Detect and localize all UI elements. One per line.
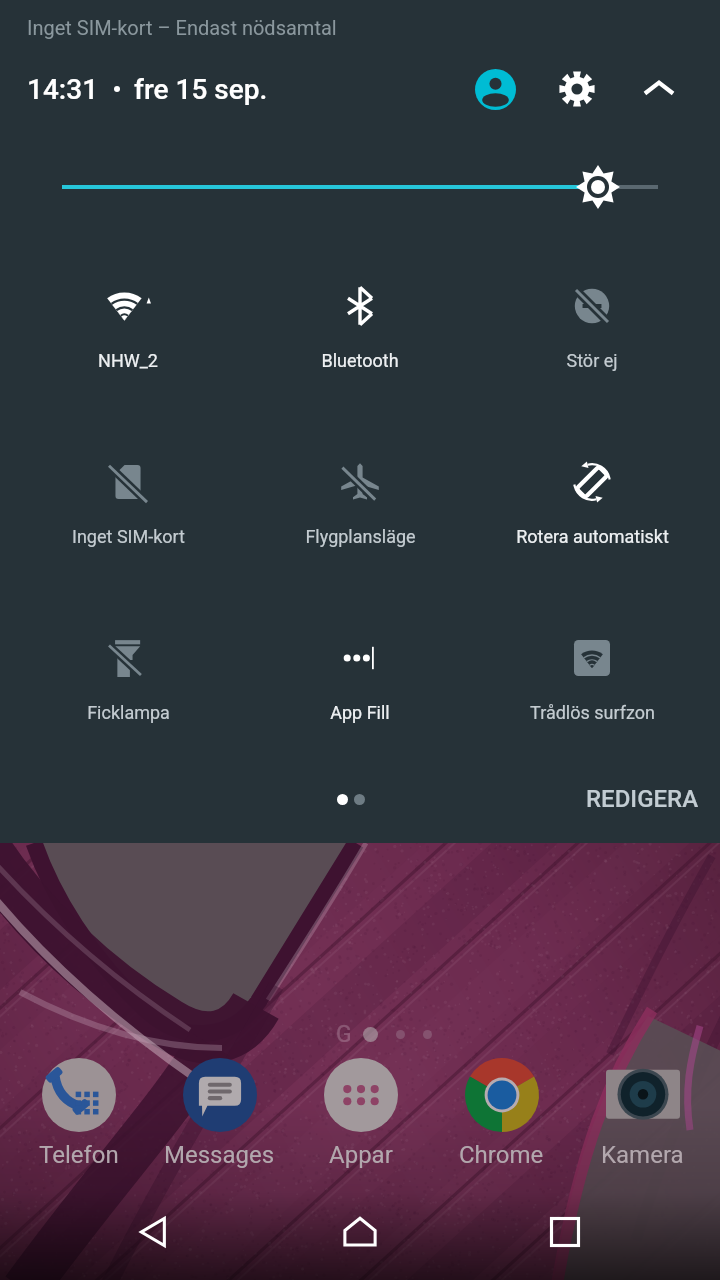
staticText: Bluetooth [321,350,399,371]
staticText: G [336,1021,352,1048]
staticText: 14:31 [27,73,99,106]
button[interactable]: Back [105,1184,205,1280]
button[interactable]: Ficklampa [12,638,244,723]
button[interactable]: Settings [544,58,610,120]
button[interactable]: REDIGERA [578,777,707,821]
button[interactable]: NHW_2 [12,286,244,371]
staticText: fre 15 sep. [134,73,268,106]
button[interactable]: Home [310,1184,410,1280]
button[interactable]: App Fill [244,638,476,723]
button[interactable]: Flygplansläge [244,462,476,547]
staticText: Trådlös surfzon [530,702,655,723]
staticText: Telefon [39,1141,119,1169]
staticText: REDIGERA [586,785,699,813]
button[interactable]: Telefon [8,1052,149,1169]
staticText: Rotera automatiskt [516,526,669,547]
button[interactable]: Messages [149,1052,290,1169]
staticText: Stör ej [566,350,618,371]
button[interactable]: Trådlös surfzon [476,638,708,723]
staticText: Chrome [459,1141,544,1169]
staticText: Kamera [601,1141,684,1169]
button[interactable]: Brightness [0,159,720,215]
button[interactable]: Rotera automatiskt [476,462,708,547]
staticText: Ficklampa [87,702,170,723]
staticText: Flygplansläge [305,526,416,547]
staticText: Appar [329,1141,393,1169]
button[interactable]: Bluetooth [244,286,476,371]
button[interactable]: Chrome [431,1052,572,1169]
button[interactable]: Stör ej [476,286,708,371]
staticText: Messages [164,1141,275,1169]
button[interactable]: User profile [462,58,528,120]
button[interactable]: Appar [290,1052,431,1169]
staticText: NHW_2 [98,350,158,371]
button[interactable]: Inget SIM-kort [12,462,244,547]
staticText: Inget SIM-kort – Endast nödsamtal [27,16,337,39]
button[interactable]: Kamera [572,1052,713,1169]
button[interactable]: Collapse quick settings [626,58,692,120]
button[interactable]: Recents [515,1184,615,1280]
staticText: Inget SIM-kort [72,526,185,547]
staticText: App Fill [330,702,390,723]
